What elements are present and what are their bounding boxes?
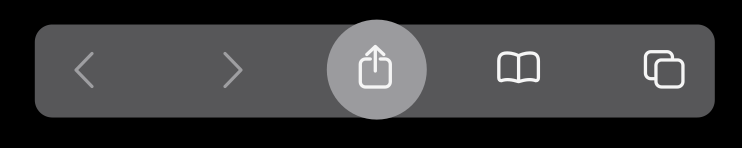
- button[interactable]: Forward: [173, 23, 293, 116]
- button[interactable]: Share: [315, 23, 435, 116]
- button[interactable]: Tabs: [603, 23, 723, 116]
- button[interactable]: Back: [24, 23, 144, 116]
- button[interactable]: Bookmarks: [459, 23, 579, 116]
